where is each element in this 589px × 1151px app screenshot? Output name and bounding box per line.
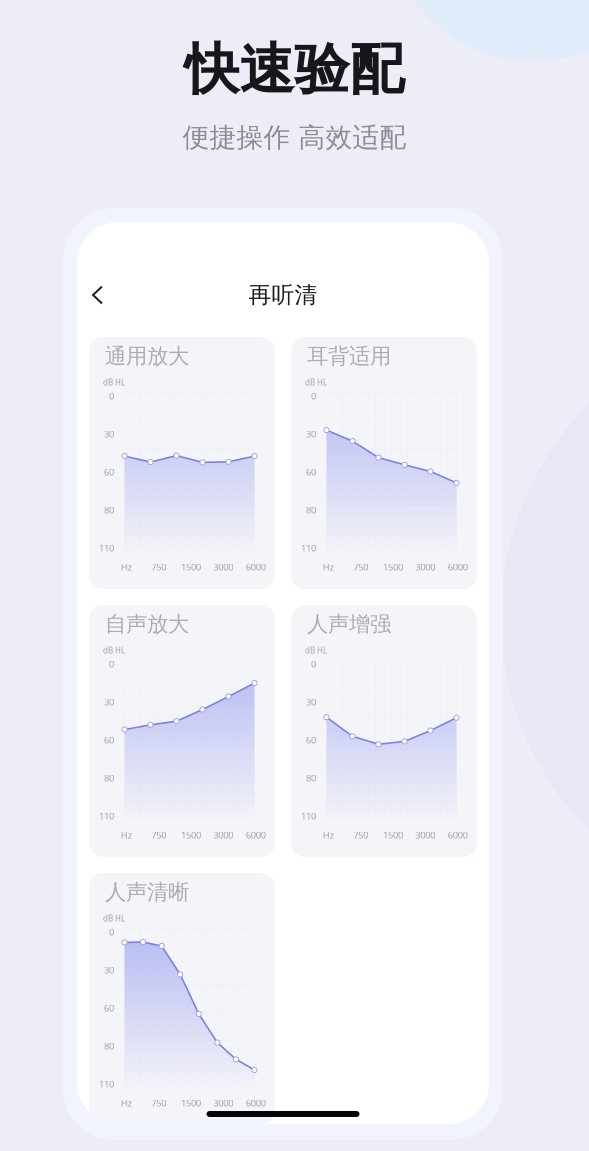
staticText: 自声放大	[105, 611, 189, 637]
staticText: 3000	[213, 561, 233, 573]
staticText: 80	[306, 504, 316, 516]
staticText: 80	[104, 1040, 114, 1052]
staticText: 3000	[213, 1097, 233, 1109]
staticText: 6000	[448, 829, 468, 841]
staticText: 通用放大	[105, 343, 189, 369]
staticText: 0	[109, 390, 114, 402]
staticText: 30	[104, 696, 114, 708]
staticText: 0	[109, 926, 114, 938]
staticText: 750	[151, 1097, 166, 1109]
staticText: Hz	[121, 561, 132, 573]
staticText: dB HL	[305, 645, 327, 656]
staticText: 750	[353, 829, 368, 841]
staticText: 110	[301, 810, 316, 822]
staticText: 30	[104, 428, 114, 440]
staticText: 60	[104, 734, 114, 746]
staticText: 80	[104, 772, 114, 784]
staticText: 110	[99, 810, 114, 822]
staticText: 6000	[246, 829, 266, 841]
staticText: 750	[353, 561, 368, 573]
staticText: 便捷操作 高效适配	[182, 121, 406, 154]
staticText: 0	[311, 658, 316, 670]
staticText: 耳背适用	[307, 343, 391, 369]
staticText: Hz	[323, 829, 334, 841]
staticText: 110	[99, 1078, 114, 1090]
staticText: 750	[151, 829, 166, 841]
staticText: dB HL	[305, 377, 327, 388]
staticText: 750	[151, 561, 166, 573]
staticText: 人声增强	[307, 611, 391, 637]
staticText: 3000	[213, 829, 233, 841]
staticText: 再听清	[248, 281, 317, 309]
staticText: 3000	[415, 829, 435, 841]
staticText: Hz	[121, 829, 132, 841]
staticText: 6000	[448, 561, 468, 573]
staticText: 1500	[383, 561, 403, 573]
staticText: 80	[104, 504, 114, 516]
staticText: Hz	[121, 1097, 132, 1109]
staticText: 110	[301, 542, 316, 554]
staticText: Hz	[323, 561, 334, 573]
staticText: 3000	[415, 561, 435, 573]
staticText: 80	[306, 772, 316, 784]
staticText: dB HL	[103, 645, 125, 656]
staticText: 人声清晰	[105, 879, 189, 905]
staticText: 60	[104, 1002, 114, 1014]
staticText: 60	[306, 734, 316, 746]
staticText: 0	[311, 390, 316, 402]
staticText: 60	[104, 466, 114, 478]
staticText: 110	[99, 542, 114, 554]
staticText: 60	[306, 466, 316, 478]
staticText: 30	[306, 696, 316, 708]
staticText: dB HL	[103, 913, 125, 924]
staticText: 1500	[383, 829, 403, 841]
staticText: 30	[306, 428, 316, 440]
staticText: 1500	[181, 561, 201, 573]
button[interactable]: Back	[82, 275, 113, 314]
staticText: 1500	[181, 829, 201, 841]
staticText: 0	[109, 658, 114, 670]
staticText: dB HL	[103, 377, 125, 388]
staticText: 30	[104, 964, 114, 976]
staticText: 1500	[181, 1097, 201, 1109]
staticText: 6000	[246, 561, 266, 573]
staticText: 6000	[246, 1097, 266, 1109]
staticText: 快速验配	[184, 36, 404, 103]
